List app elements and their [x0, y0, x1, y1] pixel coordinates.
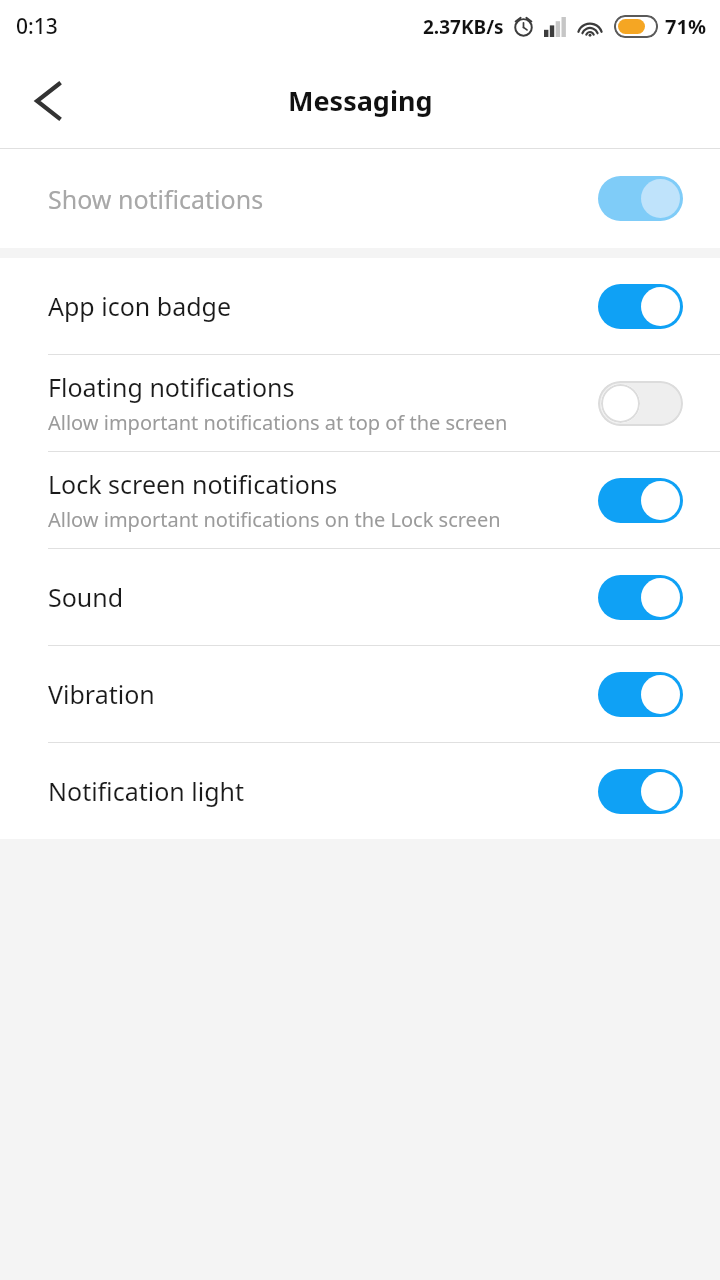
button[interactable]: Vibration: [0, 646, 720, 742]
staticText: Allow important notifications on the Loc…: [48, 506, 501, 533]
staticText: Sound: [48, 580, 124, 614]
staticText: Lock screen notifications: [48, 467, 338, 501]
staticText: Floating notifications: [48, 370, 295, 404]
staticText: Allow important notifications at top of …: [48, 409, 508, 436]
staticText: 2.37KB/s: [423, 14, 504, 40]
button[interactable]: Show notifications: [0, 149, 720, 248]
staticText: App icon badge: [48, 289, 232, 323]
button[interactable]: Back: [10, 63, 86, 139]
staticText: Vibration: [48, 677, 155, 711]
staticText: 0:13: [16, 12, 58, 41]
staticText: Messaging: [288, 82, 433, 119]
staticText: Notification light: [48, 774, 244, 808]
button[interactable]: Notification light: [0, 743, 720, 839]
button[interactable]: Sound: [0, 549, 720, 645]
button[interactable]: App icon badge: [0, 258, 720, 354]
staticText: 71%: [665, 13, 706, 40]
staticText: Show notifications: [48, 182, 264, 216]
button[interactable]: Floating notifications: [0, 355, 720, 451]
button[interactable]: Lock screen notifications: [0, 452, 720, 548]
